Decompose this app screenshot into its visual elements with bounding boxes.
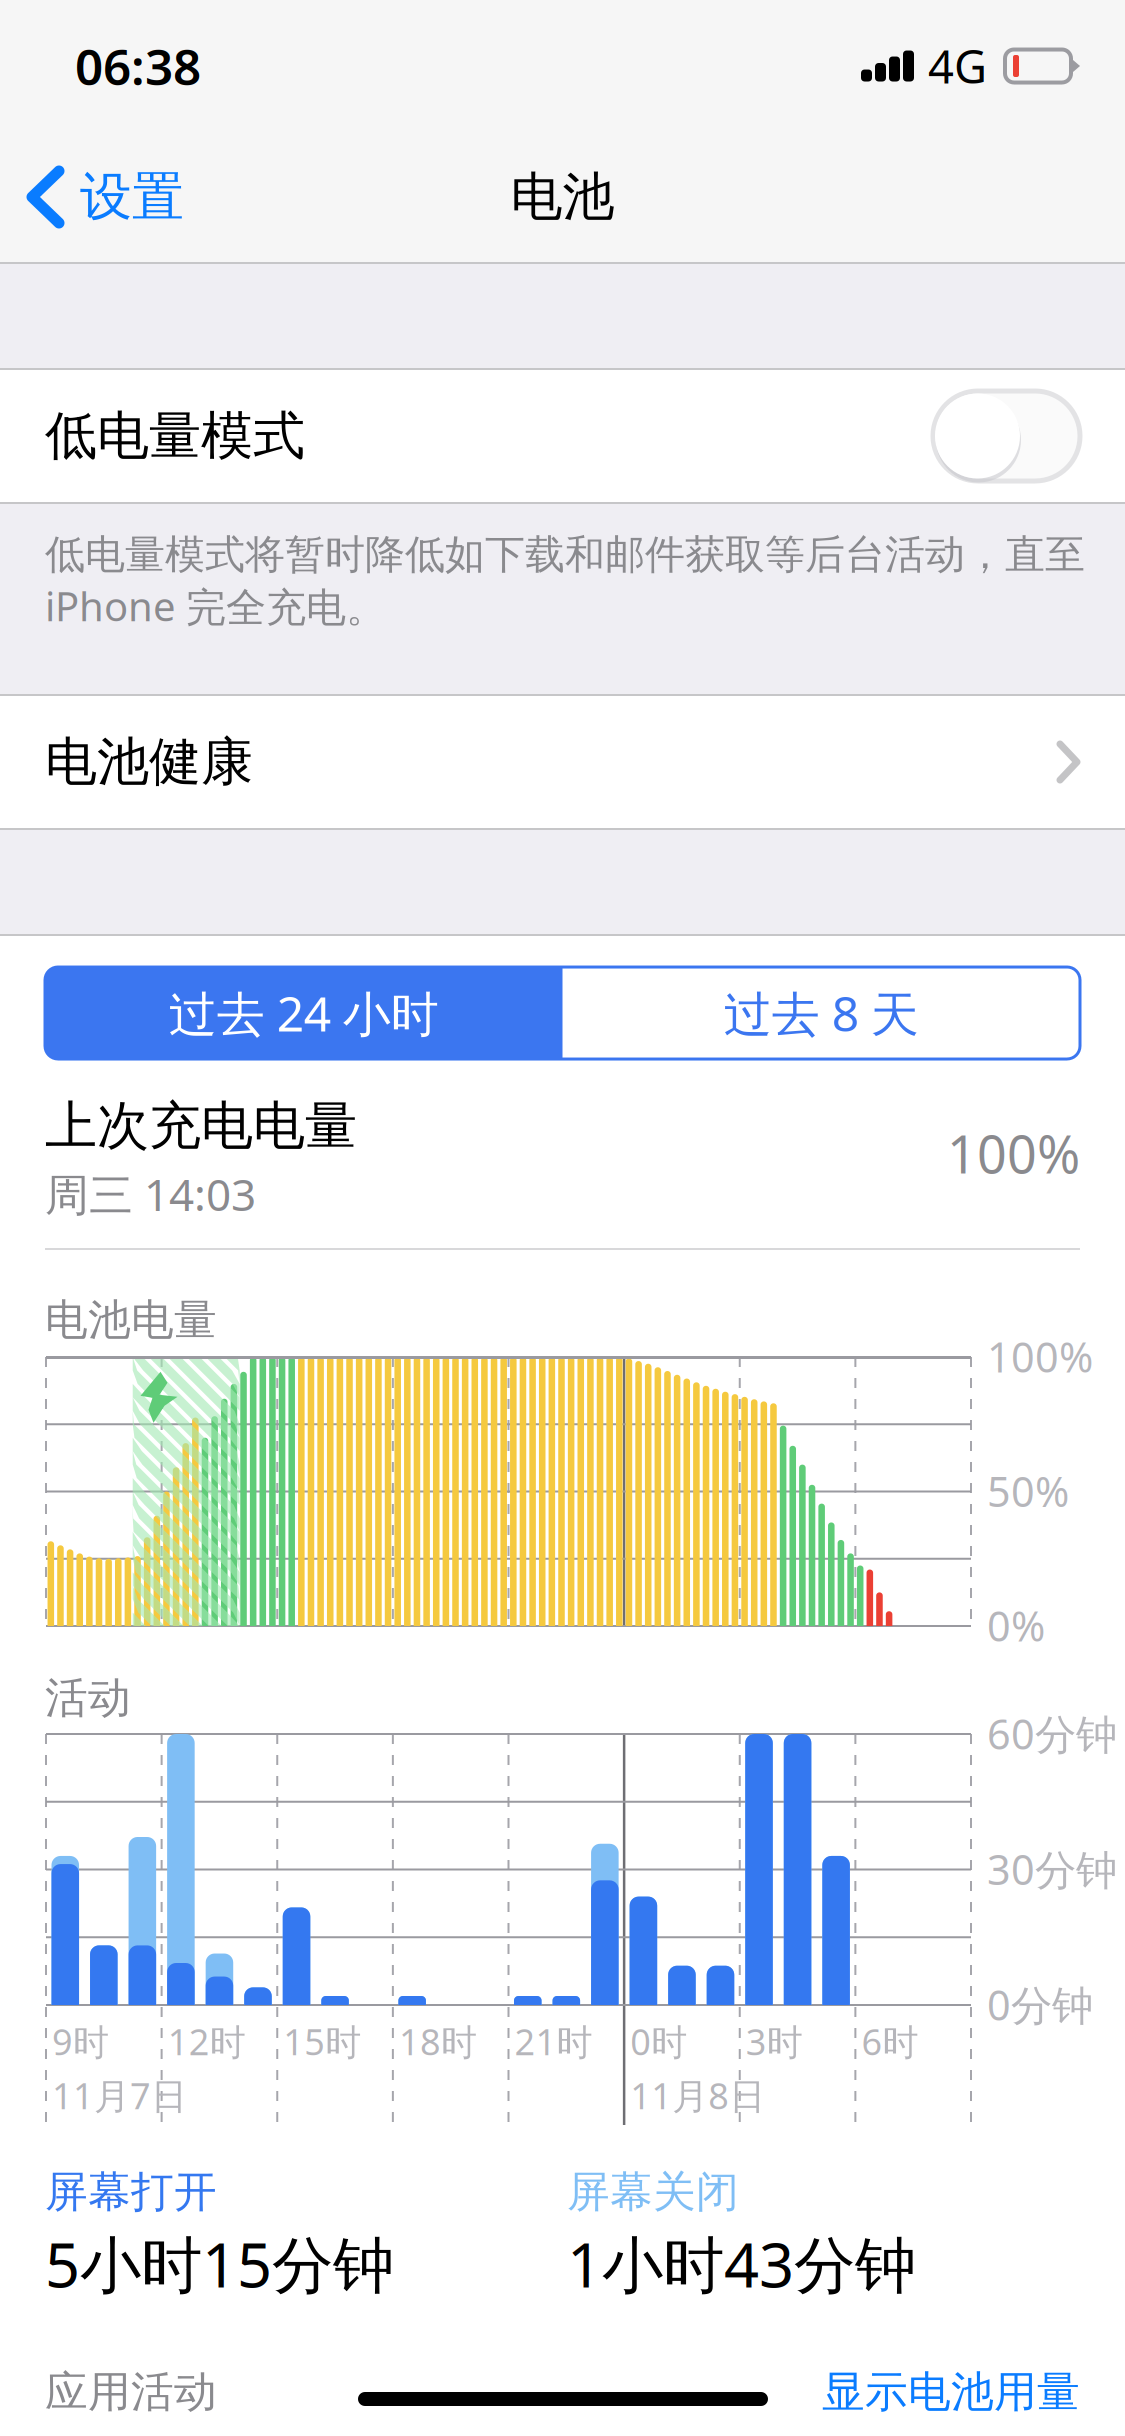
staticText: 活动 bbox=[45, 1672, 131, 1724]
staticText: 21时 bbox=[514, 2017, 592, 2065]
staticText: 6时 bbox=[861, 2017, 918, 2065]
button[interactable]: 设置 bbox=[0, 132, 198, 262]
staticText: 3时 bbox=[746, 2017, 803, 2065]
staticText: 60分钟 bbox=[987, 1706, 1117, 1761]
staticText: 低电量模式 bbox=[45, 404, 305, 468]
staticText: 9时 bbox=[52, 2017, 109, 2065]
staticText: 100% bbox=[987, 1329, 1093, 1384]
staticText: 11月8日 bbox=[630, 2071, 765, 2119]
staticText: 5小时15分钟 bbox=[45, 2223, 394, 2304]
staticText: 屏幕关闭 bbox=[567, 2166, 739, 2218]
staticText: 电池 bbox=[510, 165, 614, 229]
staticText: 0分钟 bbox=[987, 1977, 1093, 2032]
staticText: 电池电量 bbox=[45, 1294, 217, 1346]
button[interactable]: 低电量模式 bbox=[0, 370, 1125, 502]
staticText: 06:38 bbox=[75, 33, 201, 99]
staticText: 18时 bbox=[399, 2017, 477, 2065]
staticText: 15时 bbox=[283, 2017, 361, 2065]
staticText: 电池健康 bbox=[45, 730, 253, 794]
staticText: 12时 bbox=[168, 2017, 246, 2065]
staticText: 30分钟 bbox=[987, 1841, 1117, 1896]
staticText: 0时 bbox=[630, 2017, 687, 2065]
staticText: 1小时43分钟 bbox=[567, 2223, 916, 2304]
staticText: 设置 bbox=[80, 165, 184, 229]
staticText: 周三 14:03 bbox=[45, 1165, 256, 1223]
staticText: 100% bbox=[947, 1119, 1080, 1188]
button[interactable]: 显示电池用量 bbox=[45, 2366, 1080, 2418]
staticText: 应用活动 bbox=[45, 2366, 217, 2418]
staticText: 过去 8 天 bbox=[724, 981, 919, 1045]
staticText: 11月7日 bbox=[52, 2071, 187, 2119]
button[interactable]: 过去 24 小时 bbox=[45, 967, 562, 1059]
staticText: 显示电池用量 bbox=[822, 2366, 1080, 2418]
staticText: 4G bbox=[928, 36, 987, 96]
staticText: 过去 24 小时 bbox=[169, 981, 439, 1045]
staticText: 上次充电电量 bbox=[45, 1094, 357, 1158]
staticText: 屏幕打开 bbox=[45, 2166, 217, 2218]
button[interactable]: 电池健康 bbox=[0, 696, 1125, 828]
staticText: 50% bbox=[987, 1463, 1069, 1518]
staticText: 0% bbox=[987, 1598, 1045, 1653]
button[interactable]: 过去 8 天 bbox=[562, 967, 1080, 1059]
staticText: 低电量模式将暂时降低如下载和邮件获取等后台活动，直至 iPhone 完全充电。 bbox=[45, 530, 1085, 632]
